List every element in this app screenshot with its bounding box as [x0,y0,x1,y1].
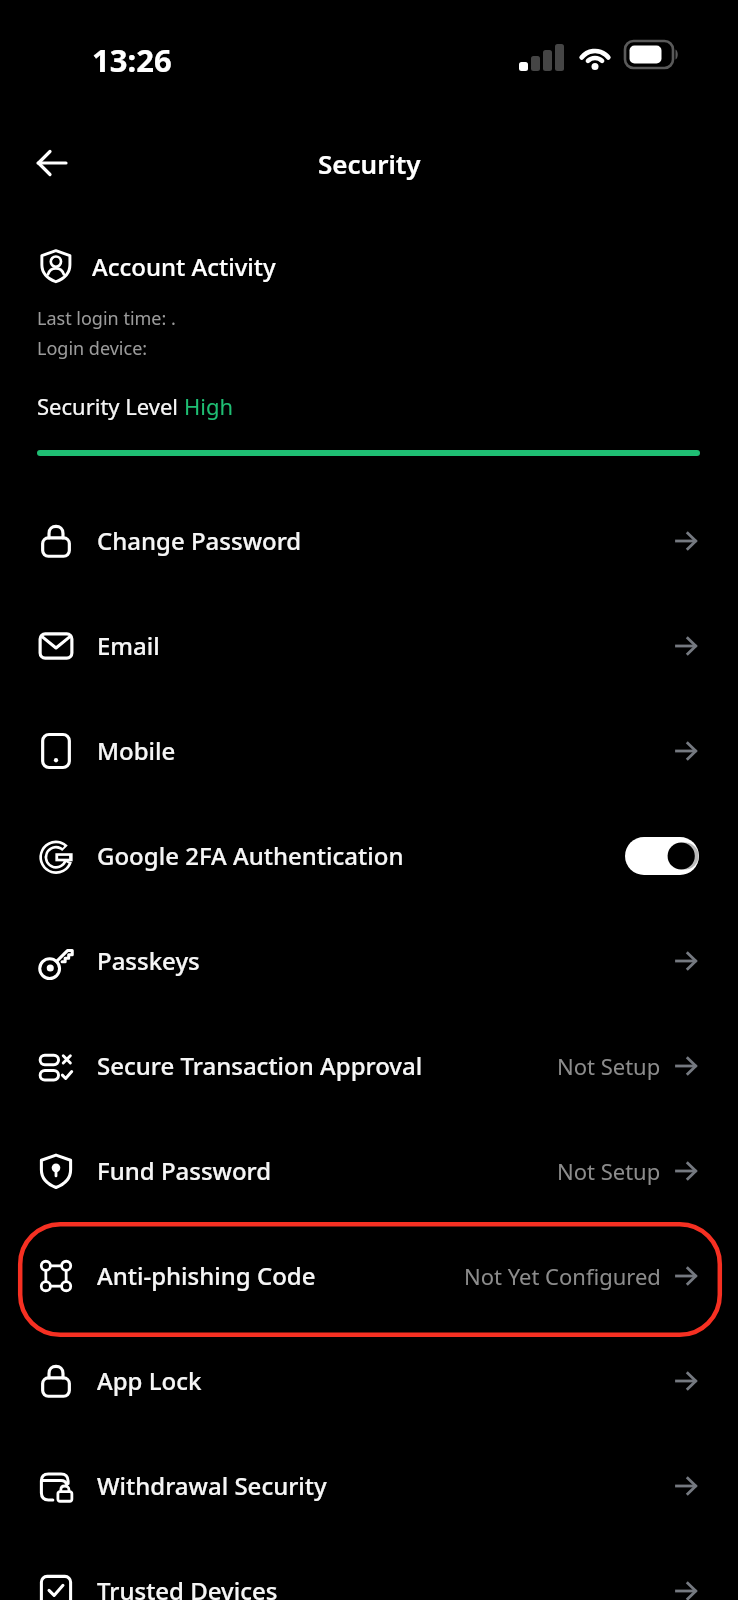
staticText: Mobile [97,734,176,767]
staticText: Trusted Devices [97,1574,278,1600]
staticText: Withdrawal Security [97,1469,327,1502]
staticText: Fund Password [97,1154,272,1187]
staticText: Google 2FA Authentication [97,839,404,872]
staticText: Login device: [37,336,148,361]
staticText: Security Level [37,391,184,421]
staticText: Anti-phishing Code [97,1259,316,1292]
button[interactable]: Account Activity [40,250,276,283]
button[interactable]: Anti-phishing Code [0,1223,738,1328]
staticText: Not Setup [557,1051,661,1081]
staticText: App Lock [97,1364,202,1397]
button[interactable]: Email [0,593,738,698]
button[interactable] [24,137,80,189]
button[interactable] [625,837,699,875]
button[interactable]: Fund Password [0,1118,738,1223]
button[interactable]: Google 2FA Authentication [0,803,738,908]
staticText: Passkeys [97,944,200,977]
button[interactable]: Withdrawal Security [0,1433,738,1538]
staticText: Account Activity [92,250,276,283]
staticText: Not Yet Configured [464,1261,661,1291]
staticText: High [184,391,234,421]
button[interactable]: Trusted Devices [0,1538,738,1600]
button[interactable]: App Lock [0,1328,738,1433]
button[interactable]: Change Password [0,488,738,593]
staticText: 13:26 [92,39,172,81]
staticText: Email [97,629,160,662]
staticText: Change Password [97,524,302,557]
button[interactable]: Passkeys [0,908,738,1013]
button[interactable]: Mobile [0,698,738,803]
button[interactable]: Secure Transaction Approval [0,1013,738,1118]
staticText: Not Setup [557,1156,661,1186]
staticText: Security [318,146,421,181]
staticText: Secure Transaction Approval [97,1049,423,1082]
staticText: Last login time: . [37,306,176,331]
